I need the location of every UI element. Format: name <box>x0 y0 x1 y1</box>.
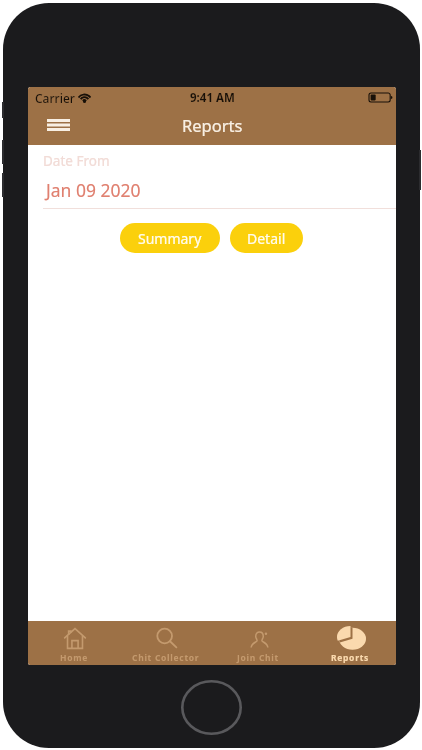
staticText: Chit Collector <box>132 652 200 664</box>
staticText: 9:41 AM <box>190 90 235 106</box>
button[interactable]: Home <box>28 621 120 665</box>
staticText: Join Chit <box>237 652 279 664</box>
button[interactable]: Menu <box>40 110 76 140</box>
button[interactable]: Detail <box>230 223 303 253</box>
button[interactable]: Chit Collector <box>120 621 212 665</box>
staticText: Summary <box>138 229 202 248</box>
staticText: Reports <box>331 652 369 664</box>
button[interactable]: Join Chit <box>212 621 304 665</box>
staticText: Reports <box>182 114 243 136</box>
button[interactable]: Reports <box>304 621 396 665</box>
staticText: Jan 09 2020 <box>46 178 141 202</box>
staticText: Date From <box>43 152 110 170</box>
staticText: Home <box>60 652 88 664</box>
staticText: Carrier <box>35 90 75 106</box>
button[interactable]: Summary <box>120 223 220 253</box>
staticText: Detail <box>247 229 286 248</box>
